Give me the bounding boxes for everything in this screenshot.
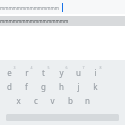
button[interactable]: n bbox=[81, 93, 94, 107]
staticText: i bbox=[94, 67, 97, 78]
button[interactable]: h bbox=[55, 79, 68, 93]
staticText: 3 bbox=[13, 65, 16, 70]
staticText: y bbox=[59, 67, 64, 78]
staticText: 4 bbox=[30, 65, 33, 70]
button[interactable]: 6 bbox=[55, 65, 68, 79]
button[interactable]: 5 bbox=[37, 65, 50, 79]
staticText: b bbox=[68, 95, 73, 106]
staticText: u bbox=[76, 67, 81, 78]
button[interactable]: mmmmmmmmmmmmmmmmmmmmmmmmmmmmmmmmmmmmmm bbox=[0, 16, 125, 26]
button[interactable]: mmmmmmmmmmmmmmmmmmmmmmmmmmmmmmmmmm bbox=[0, 0, 125, 14]
button[interactable]: x bbox=[12, 93, 25, 107]
staticText: k bbox=[93, 81, 98, 92]
button[interactable]: b bbox=[64, 93, 77, 107]
button[interactable]: v bbox=[46, 93, 59, 107]
staticText: t bbox=[42, 67, 45, 78]
staticText: 8 bbox=[99, 65, 102, 70]
button[interactable]: 8 bbox=[89, 65, 102, 79]
staticText: 5 bbox=[47, 65, 50, 70]
button[interactable]: f bbox=[20, 79, 33, 93]
button[interactable]: 4 bbox=[20, 65, 33, 79]
staticText: d bbox=[7, 81, 12, 92]
staticText: x bbox=[16, 95, 21, 106]
staticText: h bbox=[59, 81, 64, 92]
staticText: n bbox=[85, 95, 90, 106]
staticText: c bbox=[34, 95, 38, 106]
staticText: g bbox=[41, 81, 46, 92]
staticText: 6 bbox=[65, 65, 68, 70]
button[interactable]: g bbox=[37, 79, 50, 93]
button[interactable]: c bbox=[29, 93, 42, 107]
button[interactable]: k bbox=[89, 79, 102, 93]
staticText: mmmmmmmmmmmmmmmmmmmmmmmmmmmmmmmmmm bbox=[0, 5, 62, 11]
staticText: mmmmmmmmmmmmmmmmmmmmmmmmmmmmmmmmmmmmmm bbox=[0, 18, 70, 24]
staticText: v bbox=[50, 95, 55, 106]
staticText: f bbox=[25, 81, 28, 92]
button[interactable]: j bbox=[72, 79, 85, 93]
staticText: r bbox=[25, 67, 29, 78]
staticText: 7 bbox=[82, 65, 85, 70]
button[interactable]: 3 bbox=[3, 65, 16, 79]
staticText: j bbox=[77, 81, 80, 92]
button[interactable]: 7 bbox=[72, 65, 85, 79]
button[interactable]: d bbox=[3, 79, 16, 93]
staticText: e bbox=[7, 67, 12, 78]
